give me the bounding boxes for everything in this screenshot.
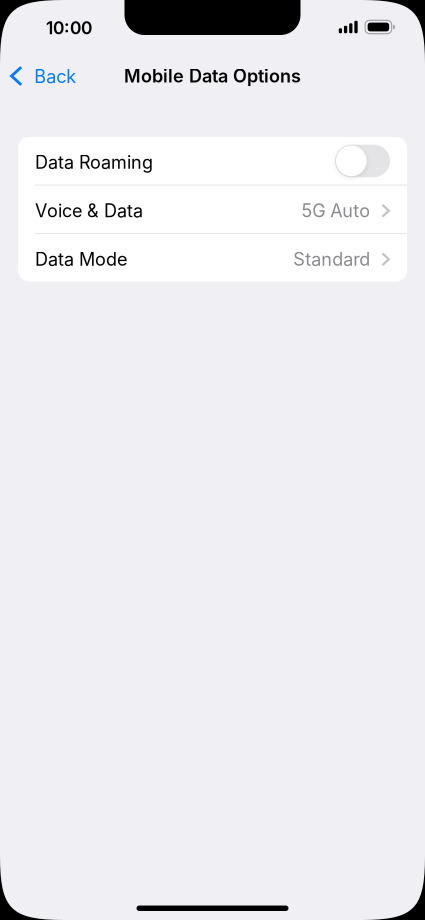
staticText: Back (34, 66, 76, 87)
staticText: Standard (293, 248, 370, 270)
staticText: Voice & Data (35, 200, 143, 222)
button[interactable]: Voice & Data (18, 185, 407, 233)
button[interactable]: Data Mode (18, 234, 407, 281)
staticText: Mobile Data Options (124, 65, 301, 87)
staticText: Data Roaming (35, 151, 153, 173)
button[interactable]: Data Roaming (335, 145, 390, 177)
staticText: 10:00 (46, 17, 92, 38)
button[interactable]: Back (0, 59, 84, 93)
staticText: 5G Auto (301, 200, 370, 222)
staticText: Data Mode (35, 248, 127, 270)
